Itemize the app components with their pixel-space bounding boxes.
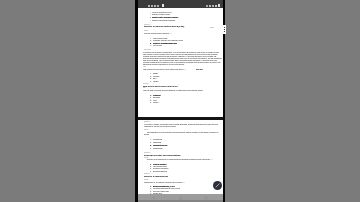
staticText: Termination pre xyxy=(153,144,168,146)
staticText: • xyxy=(150,19,151,21)
staticText: A process is a program in execution. It … xyxy=(143,51,222,65)
staticText: Answer xyxy=(144,157,149,159)
staticText: What is a Process Control Block (PCB) xyxy=(144,25,185,28)
staticText: What is deadlock in OS? xyxy=(152,11,172,13)
staticText: 4. xyxy=(150,170,152,172)
staticText: 3. xyxy=(150,190,152,192)
staticText: What is deadlock in OS? xyxy=(152,11,172,13)
staticText: Mutual exclusion xyxy=(153,165,167,167)
staticText: What is a Semaphore? xyxy=(144,175,168,178)
staticText: Halted xyxy=(153,101,159,103)
staticText: Explain Process States xyxy=(152,13,171,15)
staticText: 1. xyxy=(150,72,152,74)
staticText: 4. xyxy=(150,44,152,46)
staticText: 2. xyxy=(150,141,152,143)
staticText: 4. xyxy=(150,170,152,172)
staticText: 2. xyxy=(150,75,152,77)
staticText: • xyxy=(150,13,151,15)
staticText: Counting semaphore that counts xyxy=(153,187,181,189)
staticText: 4. xyxy=(150,80,152,82)
button[interactable]: Edit xyxy=(213,181,222,190)
staticText: A process is simply a program that is be… xyxy=(144,123,223,127)
staticText: Explain scheduling methods xyxy=(152,19,176,21)
staticText: 2. xyxy=(150,96,152,98)
staticText: Answer xyxy=(144,129,149,131)
staticText: The difference is that programs are the … xyxy=(144,131,223,135)
staticText: Tips xyxy=(143,87,146,89)
staticText: Creation xyxy=(153,94,161,96)
staticText: • xyxy=(150,16,151,18)
staticText: 3. xyxy=(150,144,152,146)
staticText: 1. xyxy=(150,163,152,165)
staticText: Program counter and registers used xyxy=(153,39,183,41)
button[interactable]: Scroll handle xyxy=(221,25,226,34)
staticText: Explain Process States xyxy=(152,13,171,15)
staticText: Counting semaphore that counts xyxy=(153,187,181,189)
staticText: 1. xyxy=(150,94,152,96)
staticText: 4. xyxy=(150,147,152,149)
staticText: 3. xyxy=(150,99,152,101)
staticText: Mutex lock xyxy=(153,192,162,194)
staticText: Preemption xyxy=(153,147,163,149)
button[interactable]: Back xyxy=(152,196,156,200)
staticText: The process control block is also called… xyxy=(143,68,187,70)
staticText: Termination pre xyxy=(153,144,168,146)
staticText: 1. xyxy=(150,185,152,187)
staticText: Note xyxy=(143,66,146,68)
staticText: 2. xyxy=(150,39,152,41)
staticText: Waiting xyxy=(153,75,160,77)
staticText: Mutex lock xyxy=(153,192,162,194)
staticText: Process Control Block contains ..... xyxy=(144,32,172,34)
staticText: What is inter Process Comm.? xyxy=(152,16,179,18)
staticText: • xyxy=(150,16,151,18)
staticText: Run xyxy=(153,77,157,79)
staticText: Question 6 xyxy=(144,152,151,154)
staticText: Progress condition xyxy=(153,167,169,169)
staticText: Explanation xyxy=(144,49,151,51)
staticText: Bounded waiting xyxy=(153,170,168,172)
staticText: 3. xyxy=(150,167,152,169)
staticText: 1. xyxy=(150,163,152,165)
staticText: 4. xyxy=(150,192,152,194)
staticText: Swapping xyxy=(153,141,162,143)
staticText: Binary semaphore, 0 or 1 xyxy=(153,185,176,187)
staticText: What is a Semaphore? xyxy=(144,175,168,178)
staticText: 4. xyxy=(150,101,152,103)
staticText: 1. xyxy=(150,37,152,39)
staticText: List of files xyxy=(153,44,162,46)
staticText: Binary semaphore, 0 or 1 xyxy=(153,185,176,187)
staticText: What is a Process Control Block (PCB) xyxy=(144,25,185,28)
staticText: 2. xyxy=(150,141,152,143)
staticText: 3. xyxy=(150,77,152,79)
staticText: 1. xyxy=(150,72,152,74)
staticText: Memory management info xyxy=(153,42,177,44)
staticText: Critical Section xyxy=(153,163,167,165)
staticText: Each process has its own PCB in the OS. xyxy=(143,85,179,87)
staticText: • xyxy=(150,19,151,21)
staticText: Progress condition xyxy=(153,167,169,169)
staticText: Halted xyxy=(153,80,159,82)
staticText: 2. xyxy=(150,187,152,189)
staticText: Binary semaphore, 0 or 1 xyxy=(153,185,176,187)
staticText: Run xyxy=(153,77,157,79)
staticText: Question 7 xyxy=(144,173,151,175)
staticText: 4. xyxy=(150,80,152,82)
staticText: 4. xyxy=(150,192,152,194)
staticText: 1. xyxy=(150,185,152,187)
staticText: Process synchronization is required when… xyxy=(144,158,213,160)
staticText: Running xyxy=(153,96,160,98)
staticText: 2. xyxy=(150,187,152,189)
staticText: 4. xyxy=(150,101,152,103)
staticText: Wait and signal ops xyxy=(153,190,170,192)
staticText: 2. xyxy=(150,96,152,98)
staticText: 3. xyxy=(150,42,152,44)
staticText: 1. xyxy=(150,37,152,39)
staticText: Ready xyxy=(153,72,159,74)
button[interactable]: Home xyxy=(178,196,182,200)
staticText: 3. xyxy=(150,42,152,44)
staticText: Process synchronization is required when… xyxy=(144,158,213,160)
staticText: Critical Section xyxy=(153,163,167,165)
staticText: Termination pre xyxy=(153,144,168,146)
staticText: What is inter Process Comm.? xyxy=(152,16,179,18)
